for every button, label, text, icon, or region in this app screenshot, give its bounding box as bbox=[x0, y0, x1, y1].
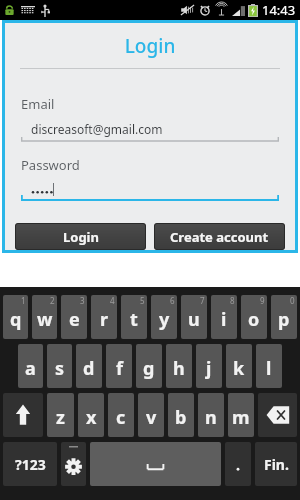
button[interactable]: 9 bbox=[241, 295, 267, 339]
button[interactable] bbox=[21, 182, 279, 203]
staticText: i bbox=[221, 307, 227, 332]
staticText: 14:43 bbox=[262, 1, 296, 19]
staticText: 8 bbox=[230, 295, 235, 306]
button[interactable]: f bbox=[106, 344, 132, 388]
button[interactable]: 2 bbox=[32, 295, 57, 339]
button[interactable]: 6 bbox=[151, 295, 177, 339]
button[interactable]: 5 bbox=[121, 295, 147, 339]
staticText: 4 bbox=[110, 295, 115, 306]
staticText: 7 bbox=[200, 295, 205, 306]
button[interactable]: discreasoft@gmail.com bbox=[21, 121, 279, 144]
staticText: Email bbox=[21, 95, 55, 113]
button[interactable]: c bbox=[108, 393, 134, 437]
staticText: ?123 bbox=[15, 455, 46, 474]
button[interactable]: v bbox=[138, 393, 164, 437]
button[interactable]: l bbox=[256, 344, 282, 388]
button[interactable]: 0 bbox=[271, 295, 297, 339]
staticText: a bbox=[25, 356, 36, 381]
button[interactable]: d bbox=[76, 344, 102, 388]
staticText: s bbox=[55, 356, 65, 381]
staticText: c bbox=[116, 405, 126, 430]
staticText: x bbox=[86, 405, 97, 430]
staticText: d bbox=[83, 356, 95, 381]
staticText: Login bbox=[63, 228, 99, 246]
button[interactable]: m bbox=[228, 393, 254, 437]
staticText: o bbox=[248, 307, 260, 332]
staticText: 2 bbox=[50, 295, 55, 306]
staticText: Password bbox=[21, 156, 80, 174]
staticText: y bbox=[159, 307, 170, 332]
staticText: m bbox=[232, 405, 250, 430]
staticText: 1 bbox=[21, 295, 26, 306]
button[interactable]: k bbox=[226, 344, 252, 388]
button[interactable]: s bbox=[47, 344, 72, 388]
staticText: 5 bbox=[140, 295, 145, 306]
staticText: v bbox=[146, 405, 157, 430]
button[interactable]: 4 bbox=[91, 295, 117, 339]
button[interactable]: Period bbox=[225, 442, 251, 486]
button[interactable]: Space bbox=[90, 442, 221, 486]
staticText: r bbox=[100, 307, 109, 332]
button[interactable]: Create account bbox=[154, 223, 285, 250]
staticText: 6 bbox=[170, 295, 175, 306]
staticText: k bbox=[233, 356, 245, 381]
staticText: 0 bbox=[290, 295, 295, 306]
button[interactable]: Login bbox=[15, 223, 146, 250]
button[interactable]: Delete bbox=[258, 393, 297, 437]
staticText: q bbox=[10, 307, 22, 332]
button[interactable]: 7 bbox=[181, 295, 207, 339]
button[interactable]: n bbox=[198, 393, 224, 437]
button[interactable]: 8 bbox=[211, 295, 237, 339]
button[interactable]: ?123 bbox=[3, 442, 57, 486]
staticText: j bbox=[206, 356, 212, 381]
staticText: Create account bbox=[170, 228, 269, 246]
button[interactable]: h bbox=[166, 344, 192, 388]
button[interactable]: Shift bbox=[3, 393, 43, 437]
staticText: w bbox=[37, 307, 53, 332]
staticText: l bbox=[266, 356, 272, 381]
button[interactable]: g bbox=[136, 344, 162, 388]
button[interactable]: a bbox=[18, 344, 43, 388]
staticText: h bbox=[173, 356, 185, 381]
button[interactable]: b bbox=[168, 393, 194, 437]
staticText: Fin. bbox=[264, 455, 289, 474]
button[interactable]: Fin. bbox=[255, 442, 297, 486]
staticText: u bbox=[188, 307, 200, 332]
staticText: p bbox=[278, 307, 290, 332]
staticText: b bbox=[175, 405, 187, 430]
button[interactable]: z bbox=[47, 393, 74, 437]
button[interactable]: j bbox=[196, 344, 222, 388]
staticText: z bbox=[56, 405, 65, 430]
staticText: discreasoft@gmail.com bbox=[31, 121, 163, 137]
staticText: n bbox=[205, 405, 217, 430]
button[interactable]: 1 bbox=[3, 295, 28, 339]
staticText: 3 bbox=[80, 295, 85, 306]
button[interactable]: Settings bbox=[61, 442, 86, 486]
button[interactable]: x bbox=[78, 393, 104, 437]
staticText: Login bbox=[5, 33, 295, 59]
button[interactable]: 3 bbox=[61, 295, 87, 339]
staticText: f bbox=[116, 356, 123, 381]
staticText: t bbox=[130, 307, 138, 332]
staticText: g bbox=[143, 356, 155, 381]
staticText: 9 bbox=[260, 295, 265, 306]
staticText: e bbox=[69, 307, 80, 332]
